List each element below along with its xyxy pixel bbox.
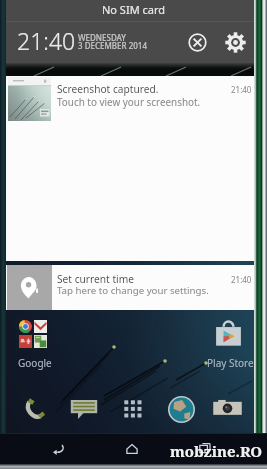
staticText: Screenshot captured.	[57, 82, 159, 96]
button[interactable]: Phone	[19, 393, 51, 425]
button[interactable]: Set current time	[6, 265, 254, 310]
staticText: 21:40	[17, 25, 76, 56]
button[interactable]: Home	[114, 434, 150, 464]
button[interactable]: Back	[40, 434, 76, 464]
staticText: 3 DECEMBER 2014	[78, 40, 147, 51]
button[interactable]	[212, 318, 245, 351]
staticText: 21:40	[231, 274, 252, 285]
staticText: WEDNESDAY	[78, 32, 127, 43]
button[interactable]: Clear all notifications	[184, 29, 211, 56]
staticText: 21:40	[231, 84, 252, 95]
button[interactable]: Camera	[211, 394, 243, 426]
staticText: Touch to view your screenshot.	[57, 95, 201, 108]
staticText: mobzine.RO	[170, 441, 263, 461]
button[interactable]: Messages	[68, 393, 100, 425]
staticText: Set current time	[57, 272, 135, 286]
button[interactable]	[16, 317, 50, 351]
button[interactable]: Browser	[165, 393, 197, 425]
staticText: Google	[18, 356, 52, 370]
button[interactable]: All apps	[117, 393, 149, 425]
staticText: No SIM card	[102, 2, 166, 17]
button[interactable]: Settings	[222, 29, 249, 56]
staticText: Play Store	[207, 356, 254, 370]
staticText: Tap here to change your settings.	[57, 284, 209, 297]
button[interactable]: Recent apps	[187, 433, 223, 463]
button[interactable]: Screenshot captured.	[6, 76, 254, 261]
